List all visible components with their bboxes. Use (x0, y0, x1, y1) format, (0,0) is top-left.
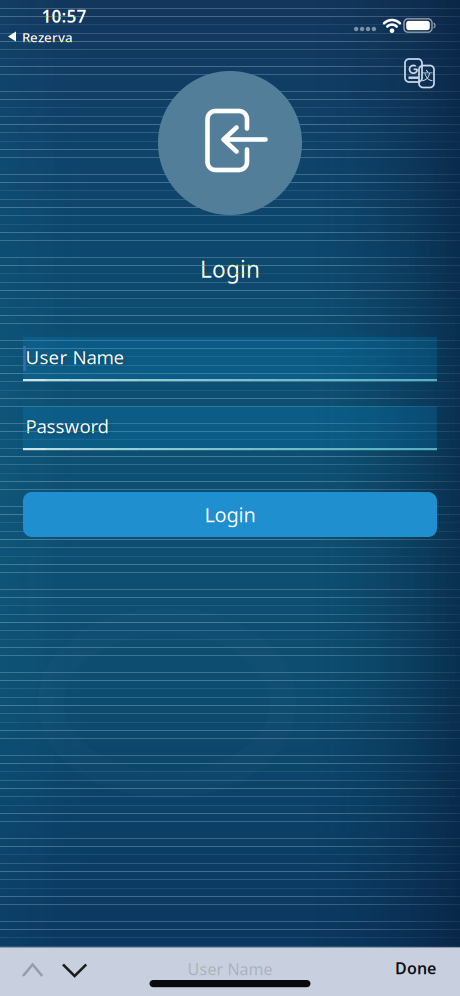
button[interactable]: Login (23, 492, 437, 537)
button[interactable]: Next field (63, 964, 87, 977)
staticText: 10:57 (41, 4, 86, 27)
staticText: User Name (187, 958, 272, 979)
button[interactable]: User Name (23, 337, 437, 382)
button[interactable]: Password (23, 406, 437, 451)
staticText: Password (25, 413, 108, 438)
staticText: Login (200, 254, 260, 284)
staticText: Rezerva (22, 28, 73, 46)
button[interactable]: Previous field (23, 964, 43, 977)
button[interactable]: Back to Rezerva (8, 27, 73, 47)
staticText: Done (395, 957, 436, 979)
button[interactable]: Done (395, 957, 436, 979)
staticText: User Name (25, 344, 124, 369)
staticText: 文 (421, 68, 433, 83)
button[interactable]: Translate (405, 59, 435, 89)
staticText: Login (204, 501, 255, 528)
